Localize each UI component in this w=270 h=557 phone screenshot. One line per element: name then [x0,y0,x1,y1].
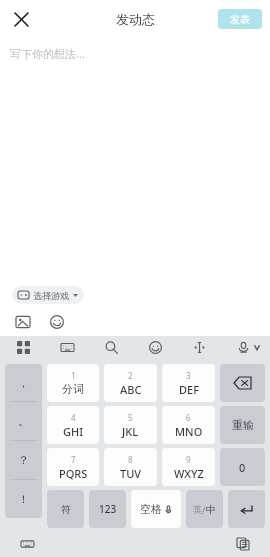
staticText: 2 [128,370,133,381]
button[interactable]: 重输 [220,406,265,444]
staticText: ， [18,376,29,390]
staticText: 发动态 [116,11,155,27]
button[interactable]: Apps [12,336,34,358]
staticText: ABC [120,382,142,397]
staticText: 写下你的想法... [10,46,85,61]
staticText: JKL [122,424,139,439]
staticText: 5 [128,412,133,423]
button[interactable]: 3 [162,364,215,402]
button[interactable]: Search [100,336,122,358]
staticText: 中 [206,503,216,516]
staticText: 123 [99,502,117,516]
staticText: 符 [61,503,71,516]
staticText: 1 [71,370,76,381]
staticText: 9 [186,454,191,465]
staticText: MNO [175,424,203,439]
button[interactable]: Hide keyboard [254,336,260,358]
button[interactable]: Emoji [144,336,166,358]
staticText: 重输 [232,418,254,432]
button[interactable]: 符 [47,490,84,528]
staticText: WXYZ [174,466,204,481]
staticText: 4 [71,412,76,423]
button[interactable]: 空格 [131,490,181,528]
staticText: PQRS [59,466,88,481]
staticText: TUV [120,466,142,481]
button[interactable]: 英 [186,490,223,528]
staticText: 8 [128,454,133,465]
staticText: 发表 [230,13,250,26]
button[interactable]: 1 [47,364,99,402]
staticText: / [202,504,206,516]
button[interactable]: Keyboard [56,336,78,358]
button[interactable]: Clipboard [232,533,254,555]
button[interactable]: Close [4,2,38,36]
button[interactable]: Cursor [188,336,210,358]
button[interactable]: Add image [10,309,36,335]
staticText: 空格 [140,502,162,516]
button[interactable]: Switch keyboard [16,533,38,555]
button[interactable]: 123 [89,490,126,528]
button[interactable]: 选择游戏 [12,286,84,304]
staticText: ？ [18,453,29,467]
button[interactable]: 发表 [218,9,262,29]
button[interactable]: 6 [162,406,215,444]
staticText: GHI [63,424,84,439]
staticText: DEF [179,382,199,397]
button[interactable]: Emoji [44,309,70,335]
button[interactable]: 7 [47,448,99,486]
button[interactable]: 0 [220,448,265,486]
staticText: 7 [71,454,76,465]
button[interactable]: 4 [47,406,99,444]
staticText: ！ [18,492,29,506]
staticText: 选择游戏 [33,290,69,301]
staticText: 6 [186,412,191,423]
button[interactable]: 8 [104,448,157,486]
button[interactable]: Voice input [232,336,254,358]
staticText: 0 [239,460,246,475]
staticText: 分词 [62,382,84,396]
button[interactable]: 9 [162,448,215,486]
button[interactable]: Enter [228,490,265,528]
button[interactable]: 2 [104,364,157,402]
staticText: 3 [186,370,191,381]
staticText: 英 [193,504,202,515]
staticText: 。 [18,414,29,428]
button[interactable]: Delete [220,364,265,402]
button[interactable]: 5 [104,406,157,444]
button[interactable]: ， [5,364,42,518]
